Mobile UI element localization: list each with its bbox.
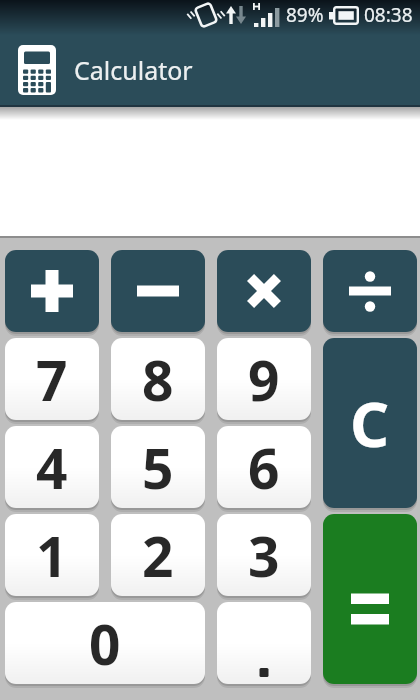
button[interactable]: C bbox=[323, 338, 417, 508]
staticText: 3 bbox=[248, 518, 280, 593]
button[interactable]: 7 bbox=[5, 338, 99, 420]
staticText: 1 bbox=[36, 518, 68, 593]
button[interactable] bbox=[323, 514, 417, 684]
staticText: 08:38 bbox=[364, 2, 413, 28]
staticText: 5 bbox=[142, 430, 174, 505]
staticText: 9 bbox=[248, 342, 280, 417]
staticText: 7 bbox=[36, 342, 68, 417]
button[interactable] bbox=[5, 250, 99, 332]
button[interactable]: Calculator bbox=[0, 32, 420, 107]
button[interactable]: 5 bbox=[111, 426, 205, 508]
button[interactable] bbox=[323, 250, 417, 332]
staticText: C bbox=[350, 382, 390, 465]
staticText: 2 bbox=[142, 518, 174, 593]
staticText: 8 bbox=[142, 342, 174, 417]
staticText: 89% bbox=[286, 2, 324, 28]
button[interactable]: 9 bbox=[217, 338, 311, 420]
button[interactable]: 3 bbox=[217, 514, 311, 596]
staticText: 4 bbox=[36, 430, 68, 505]
button[interactable]: 4 bbox=[5, 426, 99, 508]
staticText: Calculator bbox=[74, 53, 193, 87]
button[interactable] bbox=[217, 602, 311, 684]
button[interactable]: 0 bbox=[5, 602, 205, 684]
button[interactable]: 6 bbox=[217, 426, 311, 508]
button[interactable]: 8 bbox=[111, 338, 205, 420]
button[interactable]: 2 bbox=[111, 514, 205, 596]
button[interactable] bbox=[18, 45, 56, 95]
button[interactable]: 1 bbox=[5, 514, 99, 596]
button[interactable] bbox=[0, 107, 420, 236]
staticText: 6 bbox=[248, 430, 280, 505]
button[interactable] bbox=[111, 250, 205, 332]
button[interactable] bbox=[217, 250, 311, 332]
staticText: 0 bbox=[89, 606, 121, 681]
